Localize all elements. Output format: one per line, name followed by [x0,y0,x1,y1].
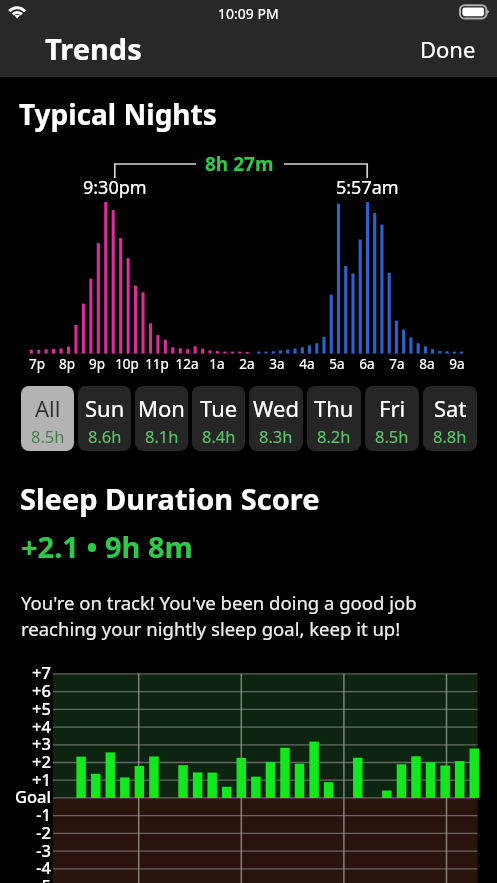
staticText: +6 [0,679,51,701]
staticText: 7a [377,355,417,373]
staticText: All [35,393,61,423]
button[interactable]: Fri [365,386,419,451]
staticText: 5:57am [336,175,399,200]
staticText: 9p [77,355,117,373]
staticText: Sleep Duration Score [20,479,320,518]
staticText: 8.8h [433,425,467,447]
staticText: 11p [137,355,177,373]
staticText: -3 [0,839,51,861]
button[interactable]: Mon [135,386,188,451]
staticText: +5 [0,697,51,719]
other: Battery [457,0,497,26]
staticText: -5 [0,874,51,883]
staticText: 8.4h [202,425,236,447]
staticText: 8.1h [145,425,179,447]
staticText: -4 [0,856,51,878]
staticText: Fri [379,393,406,423]
button[interactable]: Sat [423,386,477,451]
staticText: 9:30pm [83,175,147,200]
staticText: +4 [0,715,51,737]
staticText: +1 [0,768,51,790]
staticText: +3 [0,732,51,754]
staticText: Wed [253,393,299,423]
button[interactable]: Done [406,22,490,76]
staticText: Typical Nights [19,95,217,133]
staticText: 8.5h [31,425,65,447]
button[interactable]: Tue [192,386,245,451]
staticText: Sun [85,393,125,423]
staticText: +7 [0,661,51,683]
staticText: -2 [0,821,51,843]
button[interactable]: Thu [307,386,361,451]
staticText: You're on track! You've been doing a goo… [21,590,417,641]
button[interactable]: Wed [249,386,303,451]
other: Wi-Fi [2,0,32,26]
staticText: 8.3h [259,425,293,447]
staticText: +2 [0,750,51,772]
staticText: 7p [17,355,57,373]
staticText: 1a [197,355,237,373]
staticText: 5a [317,355,357,373]
staticText: Done [420,34,476,64]
staticText: Tue [200,393,238,423]
staticText: -1 [0,803,51,825]
staticText: Trends [45,29,142,68]
staticText: 8h 27m [205,151,274,177]
staticText: Thu [314,393,354,423]
staticText: Sat [434,393,467,423]
staticText: 3a [257,355,297,373]
staticText: 2a [227,355,267,373]
button[interactable]: Sun [78,386,131,451]
staticText: Goal [0,785,51,807]
staticText: 10p [107,355,147,373]
staticText: Mon [138,393,185,423]
staticText: 8.5h [375,425,409,447]
staticText: +2.1 • 9h 8m [21,527,193,566]
staticText: 10:09 PM [218,4,279,23]
staticText: 8p [47,355,87,373]
staticText: 8.2h [317,425,351,447]
staticText: 12a [167,355,207,373]
staticText: 4a [287,355,327,373]
staticText: 8a [407,355,447,373]
staticText: 9a [437,355,477,373]
staticText: 6a [347,355,387,373]
staticText: 8.6h [88,425,122,447]
button[interactable]: All [21,386,74,451]
